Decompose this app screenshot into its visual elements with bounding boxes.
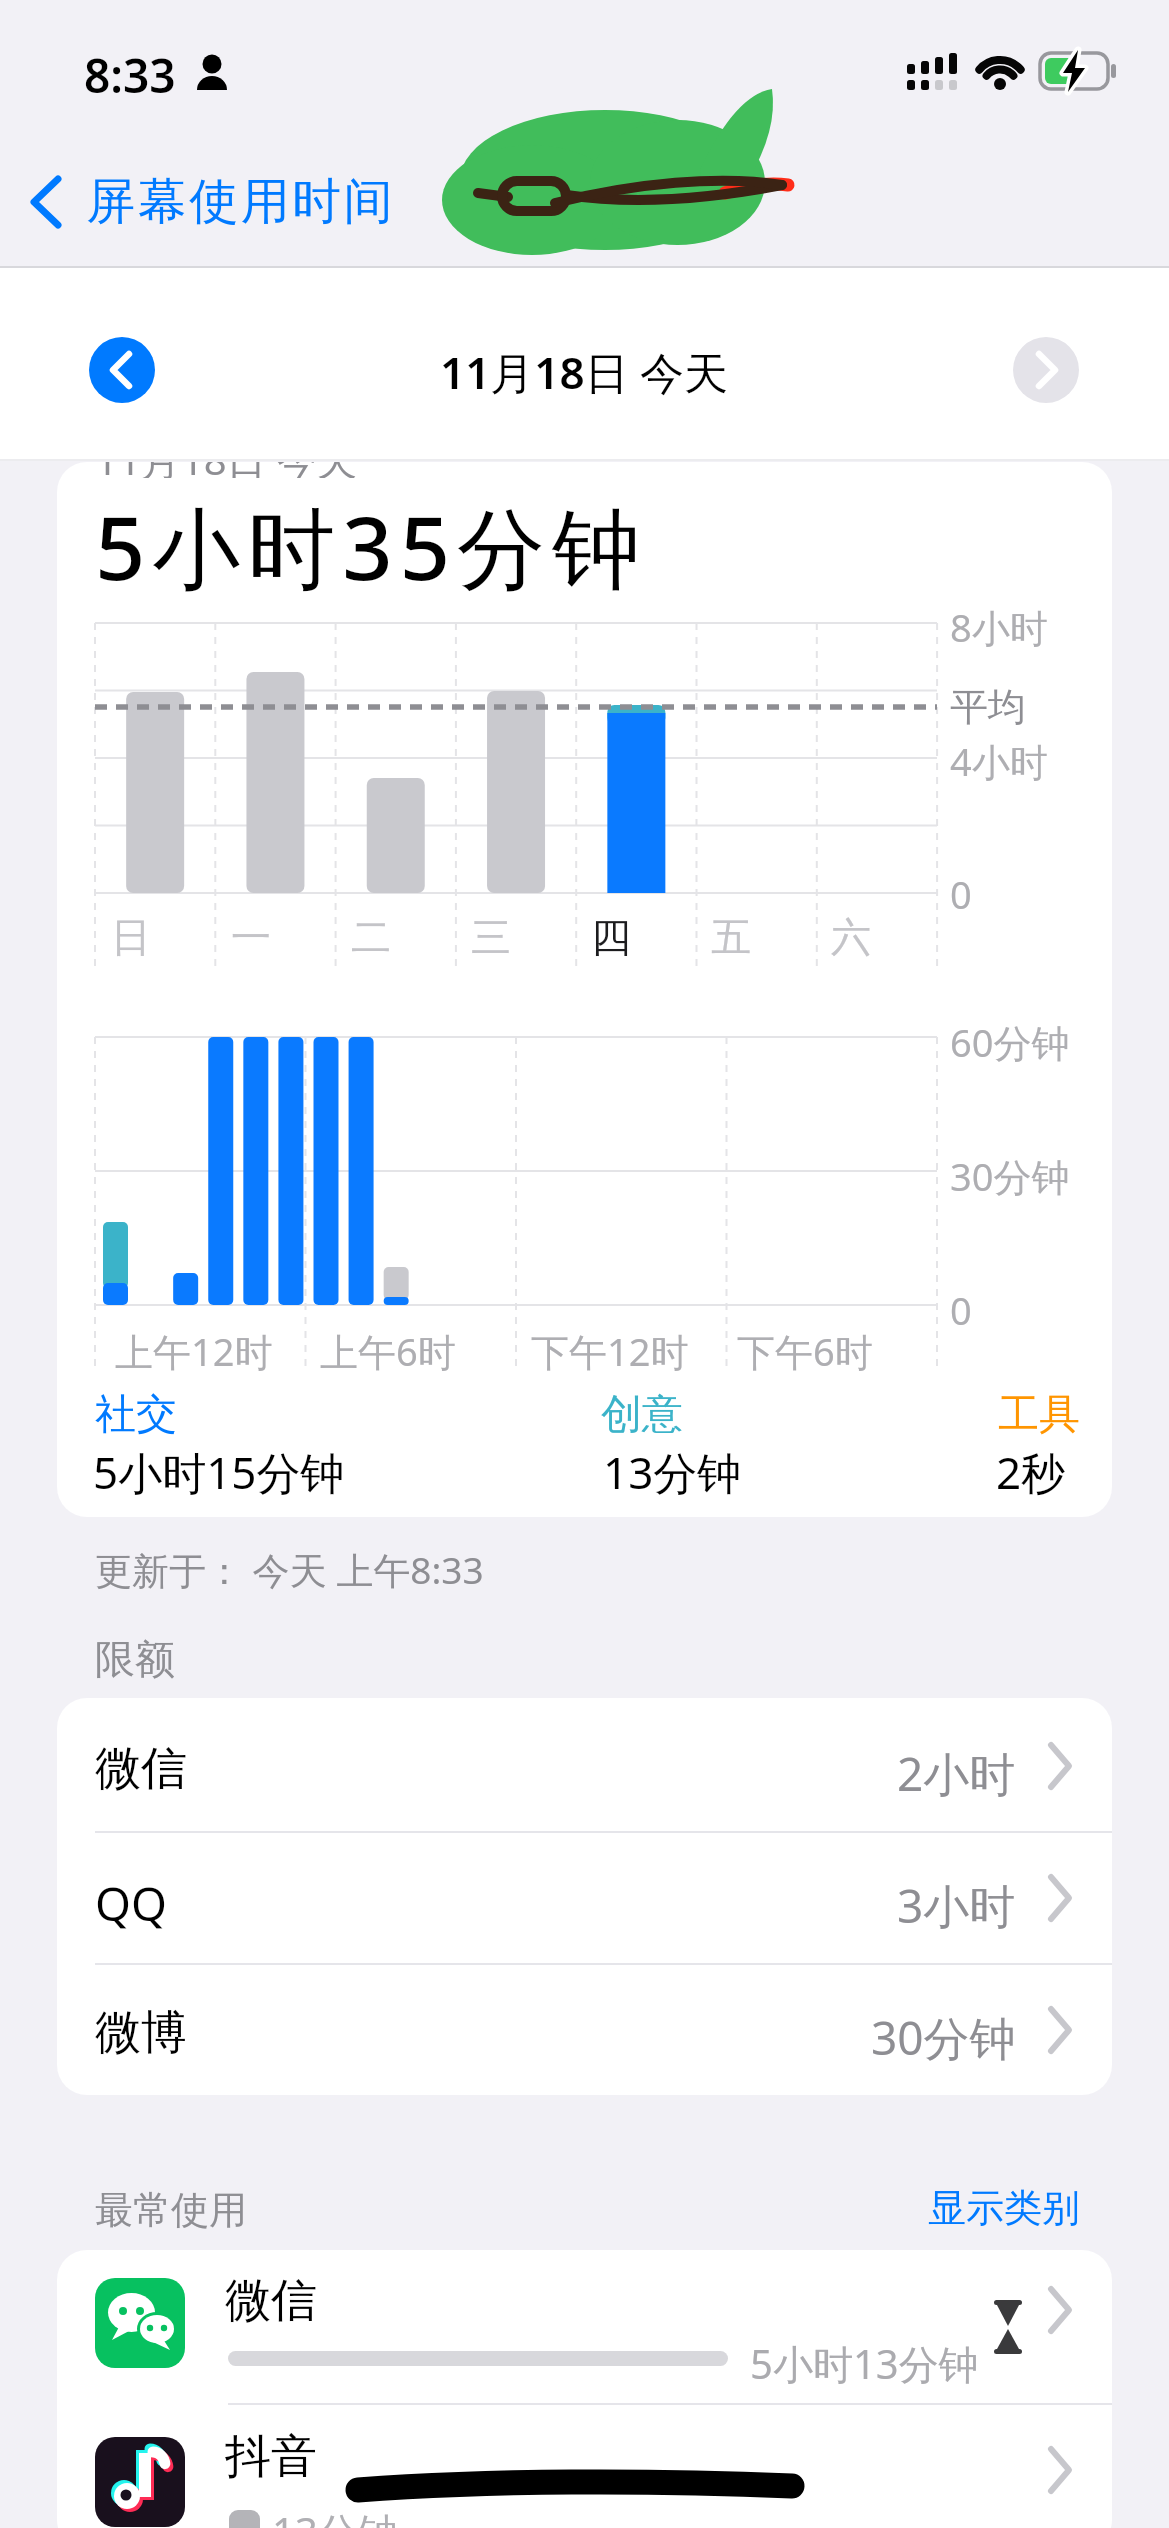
- staticText: 13分钟: [272, 2504, 398, 2528]
- button[interactable]: [57, 2250, 1112, 2405]
- staticText: 2秒: [996, 1442, 1066, 1502]
- staticText: QQ: [95, 1872, 167, 1935]
- staticText: 8:33: [84, 44, 176, 107]
- staticText: 13分钟: [603, 1442, 742, 1502]
- staticText: 5小时35分钟: [95, 486, 648, 606]
- staticText: 限额: [95, 1634, 175, 1684]
- staticText: 0: [950, 868, 972, 920]
- button[interactable]: [57, 1832, 1112, 1964]
- staticText: 抖音: [225, 2428, 317, 2486]
- staticText: 0: [950, 1284, 972, 1336]
- staticText: 五: [711, 912, 751, 962]
- staticText: 下午6时: [737, 1325, 873, 1377]
- staticText: 创意: [601, 1389, 683, 1441]
- staticText: 屏幕使用时间: [85, 171, 394, 233]
- staticText: 8小时: [950, 601, 1048, 653]
- button[interactable]: [89, 337, 155, 403]
- button[interactable]: 显示类别: [916, 2170, 1086, 2230]
- staticText: 2小时: [897, 1742, 1016, 1805]
- staticText: 5小时13分钟: [750, 2336, 979, 2391]
- staticText: 工具: [998, 1389, 1080, 1441]
- staticText: 60分钟: [950, 1016, 1070, 1068]
- staticText: 上午6时: [320, 1325, 456, 1377]
- staticText: 30分钟: [950, 1150, 1070, 1202]
- staticText: 社交: [95, 1389, 177, 1441]
- staticText: 平均: [950, 683, 1026, 731]
- staticText: 日: [111, 912, 151, 962]
- button[interactable]: [1013, 337, 1079, 403]
- staticText: 4小时: [950, 735, 1048, 787]
- button[interactable]: [57, 2405, 1112, 2528]
- button[interactable]: [20, 160, 420, 250]
- staticText: 微信: [95, 1740, 187, 1798]
- staticText: 下午12时: [531, 1325, 689, 1377]
- staticText: 二: [351, 912, 391, 962]
- staticText: 一: [231, 912, 271, 962]
- staticText: 最常使用: [95, 2186, 247, 2234]
- staticText: 11月18日 今天: [440, 342, 729, 402]
- staticText: 上午12时: [115, 1325, 273, 1377]
- staticText: 30分钟: [871, 2006, 1016, 2069]
- staticText: 四: [591, 912, 631, 962]
- staticText: 更新于： 今天 上午8:33: [95, 1544, 484, 1595]
- staticText: 六: [831, 912, 871, 962]
- button[interactable]: [57, 1698, 1112, 1832]
- staticText: 微信: [225, 2272, 317, 2330]
- staticText: 5小时15分钟: [93, 1442, 345, 1502]
- staticText: 3小时: [897, 1874, 1016, 1937]
- button[interactable]: [57, 1964, 1112, 2095]
- staticText: 显示类别: [928, 2184, 1080, 2232]
- staticText: 微博: [95, 2004, 187, 2062]
- staticText: 三: [471, 912, 511, 962]
